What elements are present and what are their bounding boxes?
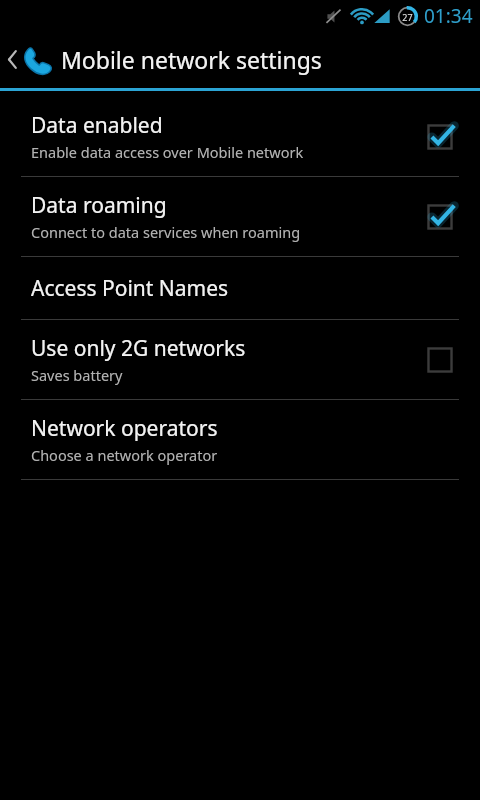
button[interactable]: Data enabled: [0, 97, 480, 176]
staticText: 27: [402, 11, 413, 23]
staticText: Use only 2G networks: [31, 334, 246, 363]
staticText: Saves battery: [31, 365, 123, 385]
staticText: Data enabled: [31, 111, 163, 140]
staticText: Connect to data services when roaming: [31, 222, 301, 242]
staticText: Choose a network operator: [31, 445, 218, 465]
button[interactable]: Use only 2G networks: [0, 320, 480, 399]
button[interactable]: Data roaming: [0, 177, 480, 256]
button[interactable]: Access Point Names: [0, 257, 480, 319]
staticText: Network operators: [31, 414, 218, 443]
staticText: 01:34: [424, 3, 473, 29]
button[interactable]: Data enabled: [423, 120, 457, 154]
button[interactable]: Navigate up: [0, 33, 60, 86]
button[interactable]: Data roaming: [423, 200, 457, 234]
staticText: Enable data access over Mobile network: [31, 142, 304, 162]
staticText: Access Point Names: [31, 274, 229, 303]
button[interactable]: Use only 2G networks: [423, 343, 457, 377]
staticText: Data roaming: [31, 191, 167, 220]
button[interactable]: Network operators: [0, 400, 480, 479]
staticText: Mobile network settings: [61, 44, 322, 75]
